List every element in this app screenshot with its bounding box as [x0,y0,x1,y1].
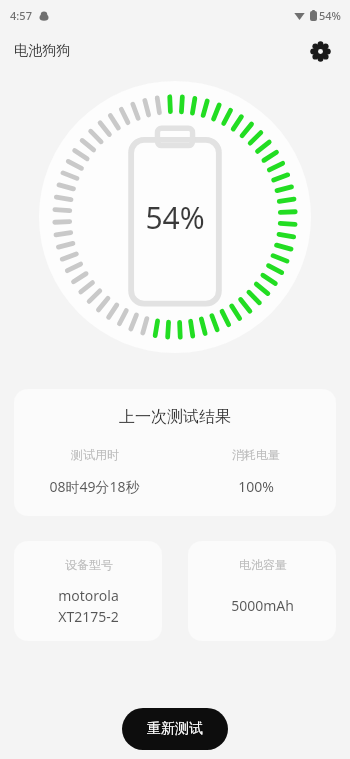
staticText: 重新测试 [147,720,203,738]
staticText: 54% [319,8,341,23]
button[interactable]: Settings [302,33,338,69]
staticText: 设备型号 [65,557,113,572]
button[interactable]: 上一次测试结果 [14,389,336,516]
staticText: 100% [238,477,274,496]
button[interactable]: 重新测试 [122,708,228,750]
button[interactable]: 电池容量 [188,541,336,641]
button[interactable]: 电池狗狗 [14,42,70,60]
staticText: 测试用时 [71,447,119,462]
button[interactable]: 设备型号 [14,541,162,641]
staticText: 5000mAh [231,596,294,615]
staticText: 电池狗狗 [14,42,70,60]
staticText: 08时49分18秒 [49,477,140,496]
staticText: 上一次测试结果 [119,407,231,427]
staticText: XT2175-2 [58,607,119,626]
staticText: motorola [58,586,119,605]
staticText: 4:57 [10,8,32,23]
staticText: 54% [145,197,205,238]
staticText: 消耗电量 [232,447,280,462]
staticText: 电池容量 [239,557,287,572]
